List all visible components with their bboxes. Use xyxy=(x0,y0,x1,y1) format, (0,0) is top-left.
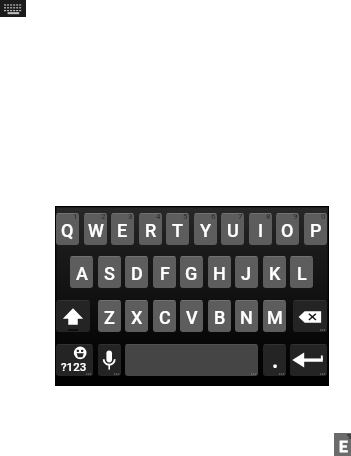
button[interactable]: W xyxy=(84,213,107,245)
button[interactable]: Z xyxy=(98,300,121,332)
button[interactable]: U xyxy=(221,213,244,245)
staticText: M xyxy=(267,307,283,328)
button[interactable]: A xyxy=(70,256,93,288)
staticText: P xyxy=(310,220,322,241)
staticText: Y xyxy=(200,220,211,241)
staticText: I xyxy=(258,220,264,241)
button[interactable]: M xyxy=(263,300,286,332)
button[interactable]: E xyxy=(111,213,134,245)
button[interactable]: Q xyxy=(56,213,79,245)
button[interactable]: H xyxy=(208,256,231,288)
staticText: E xyxy=(117,220,128,241)
button[interactable]: Keyboard notification xyxy=(0,0,26,17)
staticText: E xyxy=(339,438,348,456)
button[interactable]: Delete xyxy=(293,300,327,332)
button[interactable]: Shift xyxy=(56,300,90,332)
staticText: J xyxy=(241,263,252,284)
staticText: K xyxy=(269,263,281,284)
staticText: 1 xyxy=(73,213,78,221)
button[interactable]: E badge xyxy=(334,433,351,456)
button[interactable]: Period xyxy=(263,344,286,376)
staticText: Z xyxy=(104,307,115,328)
button[interactable]: Enter xyxy=(290,344,327,376)
button[interactable]: P xyxy=(304,213,327,245)
staticText: 9 xyxy=(293,213,298,221)
staticText: B xyxy=(214,307,226,328)
staticText: 4 xyxy=(156,213,161,221)
button[interactable]: I xyxy=(249,213,272,245)
button[interactable]: Space xyxy=(125,344,258,376)
button[interactable]: G xyxy=(180,256,203,288)
staticText: V xyxy=(186,307,198,328)
button[interactable]: J xyxy=(235,256,258,288)
staticText: 5 xyxy=(183,213,188,221)
staticText: F xyxy=(160,263,170,284)
staticText: ?123 xyxy=(61,360,87,373)
staticText: 8 xyxy=(266,213,271,221)
staticText: L xyxy=(297,263,307,284)
staticText: 0 xyxy=(321,213,326,221)
staticText: G xyxy=(185,263,198,284)
button[interactable]: O xyxy=(276,213,299,245)
staticText: W xyxy=(88,220,104,241)
staticText: 7 xyxy=(238,213,243,221)
staticText: 6 xyxy=(211,213,216,221)
staticText: 3 xyxy=(128,213,133,221)
button[interactable]: L xyxy=(290,256,313,288)
button[interactable]: R xyxy=(139,213,162,245)
button[interactable]: Symbols and emoji xyxy=(56,344,93,376)
staticText: 2 xyxy=(101,213,106,221)
button[interactable]: K xyxy=(263,256,286,288)
staticText: T xyxy=(172,220,183,241)
button[interactable]: F xyxy=(153,256,176,288)
button[interactable]: T xyxy=(166,213,189,245)
button[interactable]: V xyxy=(180,300,203,332)
staticText: C xyxy=(159,307,171,328)
button[interactable]: S xyxy=(98,256,121,288)
staticText: X xyxy=(131,307,143,328)
button[interactable]: Y xyxy=(194,213,217,245)
button[interactable]: X xyxy=(125,300,148,332)
staticText: H xyxy=(213,263,226,284)
staticText: R xyxy=(145,220,157,241)
button[interactable]: C xyxy=(153,300,176,332)
staticText: D xyxy=(131,263,143,284)
button[interactable]: Voice input xyxy=(98,344,121,376)
button[interactable]: N xyxy=(235,300,258,332)
staticText: O xyxy=(281,220,294,241)
staticText: A xyxy=(76,263,88,284)
staticText: N xyxy=(240,307,253,328)
staticText: S xyxy=(104,263,115,284)
button[interactable]: B xyxy=(208,300,231,332)
staticText: Q xyxy=(61,220,74,241)
button[interactable]: D xyxy=(125,256,148,288)
staticText: U xyxy=(227,220,239,241)
